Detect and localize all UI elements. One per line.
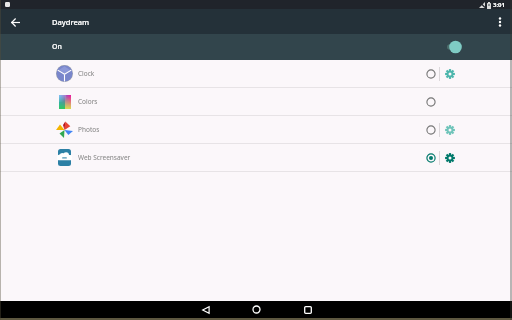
- button[interactable]: [197, 301, 214, 318]
- button[interactable]: [444, 124, 455, 135]
- staticText: Colors: [78, 97, 98, 106]
- staticText: Photos: [78, 125, 100, 134]
- button[interactable]: [444, 152, 455, 163]
- staticText: Web Screensaver: [78, 153, 131, 162]
- button[interactable]: Colors: [0, 88, 512, 115]
- button[interactable]: Web Screensaver: [0, 144, 512, 171]
- button[interactable]: [9, 16, 21, 28]
- button[interactable]: On: [0, 34, 512, 60]
- button[interactable]: Clock: [0, 60, 512, 87]
- staticText: Daydream: [52, 17, 90, 27]
- button[interactable]: [248, 301, 265, 318]
- staticText: 3:01: [493, 1, 505, 9]
- staticText: Clock: [78, 69, 95, 78]
- staticText: On: [52, 42, 62, 52]
- button[interactable]: [299, 301, 316, 318]
- button[interactable]: [495, 17, 505, 27]
- button[interactable]: [444, 68, 455, 79]
- button[interactable]: Photos: [0, 116, 512, 143]
